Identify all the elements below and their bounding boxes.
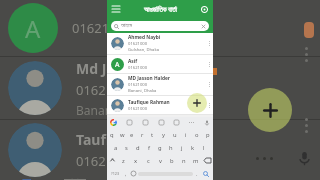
button[interactable]: Taufique Rahman <box>107 96 213 114</box>
button[interactable]: d <box>132 141 143 154</box>
button[interactable]: m <box>190 154 202 167</box>
staticText: h <box>169 144 173 152</box>
staticText: i <box>185 131 187 139</box>
staticText: w <box>120 131 125 139</box>
button[interactable]: Ahmed Naybi <box>107 33 213 54</box>
staticText: 01621000 <box>128 82 148 88</box>
staticText: k <box>191 144 195 152</box>
staticText: Md Jes <box>76 59 122 78</box>
staticText: , <box>125 170 127 177</box>
button[interactable]: Emoji <box>129 167 138 180</box>
staticText: Asif <box>128 58 138 65</box>
staticText: Banani, Dhaka <box>128 88 157 94</box>
button[interactable]: Backspace <box>202 154 213 167</box>
button[interactable]: e <box>127 128 137 141</box>
staticText: . <box>196 170 198 177</box>
staticText: b <box>170 157 174 165</box>
button[interactable]: Google <box>110 119 117 126</box>
staticText: 01621000 <box>128 106 148 112</box>
staticText: Banani <box>76 102 116 118</box>
button[interactable]: GIF <box>142 119 149 126</box>
staticText: s <box>125 144 128 152</box>
button[interactable]: u <box>169 128 180 141</box>
button[interactable]: Search <box>200 167 211 180</box>
button[interactable]: y <box>158 128 169 141</box>
button[interactable]: Settings <box>173 119 180 126</box>
staticText: Gulshan, Dhaka <box>128 47 160 53</box>
button[interactable]: c <box>142 154 154 167</box>
button[interactable]: . <box>193 167 200 180</box>
staticText: d <box>136 144 140 152</box>
staticText: a <box>114 144 118 152</box>
button[interactable]: আহমে <box>111 21 209 31</box>
staticText: Taufiq <box>76 130 119 149</box>
staticText: q <box>110 131 114 139</box>
staticText: x <box>134 157 138 165</box>
button[interactable]: n <box>178 154 190 167</box>
staticText: Taufique Rahman <box>128 99 170 106</box>
staticText: c <box>147 157 150 165</box>
staticText: p <box>206 131 210 139</box>
staticText: ?123 <box>111 171 120 176</box>
staticText: 016210 <box>76 152 121 170</box>
button[interactable]: a <box>111 141 121 154</box>
button[interactable]: z <box>117 154 130 167</box>
staticText: 01621000 <box>128 65 148 71</box>
button[interactable]: q <box>107 128 117 141</box>
button[interactable]: Add contact <box>187 93 207 113</box>
button[interactable]: Voice input <box>203 119 210 126</box>
button[interactable]: Stickers <box>126 119 133 126</box>
staticText: 016210 <box>72 19 117 37</box>
button[interactable]: t <box>147 128 158 141</box>
staticText: u <box>173 131 177 139</box>
button[interactable]: p <box>202 128 213 141</box>
button[interactable]: w <box>117 128 127 141</box>
staticText: f <box>148 144 150 152</box>
button[interactable]: ?123 <box>109 167 122 180</box>
button[interactable]: o <box>191 128 202 141</box>
staticText: j <box>181 144 183 152</box>
button[interactable]: MD Jasson Halder <box>107 74 213 95</box>
button[interactable]: Clipboard <box>158 119 165 126</box>
staticText: g <box>158 144 162 152</box>
button[interactable]: f <box>143 141 154 154</box>
button[interactable]: r <box>137 128 147 141</box>
staticText: y <box>162 131 165 139</box>
button[interactable]: h <box>165 141 176 154</box>
button[interactable]: s <box>121 141 132 154</box>
button[interactable]: Menu <box>110 3 122 15</box>
button[interactable]: k <box>187 141 198 154</box>
button[interactable]: More options <box>205 33 213 54</box>
button[interactable]: g <box>154 141 165 154</box>
staticText: e <box>130 131 134 139</box>
staticText: z <box>122 157 125 165</box>
button[interactable]: v <box>154 154 166 167</box>
button[interactable]: x <box>130 154 142 167</box>
button[interactable]: Settings <box>198 3 210 15</box>
staticText: আন্তর্জাতিক বার্তা <box>144 5 177 14</box>
button[interactable]: More options <box>205 55 213 73</box>
staticText: l <box>203 144 205 152</box>
button[interactable]: i <box>180 128 191 141</box>
button[interactable]: j <box>176 141 187 154</box>
staticText: 01621000 <box>128 41 148 47</box>
staticText: A <box>25 12 41 45</box>
button[interactable]: More options <box>205 96 213 114</box>
staticText: n <box>182 157 186 165</box>
button[interactable]: b <box>166 154 178 167</box>
staticText: 016210 <box>76 81 121 99</box>
button[interactable]: Shift <box>107 154 117 167</box>
staticText: MD Jasson Halder <box>128 75 170 82</box>
button[interactable]: , <box>122 167 129 180</box>
button[interactable]: A <box>107 55 213 73</box>
button[interactable]: l <box>198 141 209 154</box>
staticText: v <box>159 157 162 165</box>
staticText: আহমে <box>121 23 133 29</box>
button[interactable]: More options <box>205 74 213 95</box>
staticText: o <box>195 131 199 139</box>
staticText: r <box>141 131 144 139</box>
staticText: A <box>115 60 120 70</box>
staticText: t <box>151 131 154 139</box>
staticText: Ahmed Naybi <box>128 34 161 41</box>
